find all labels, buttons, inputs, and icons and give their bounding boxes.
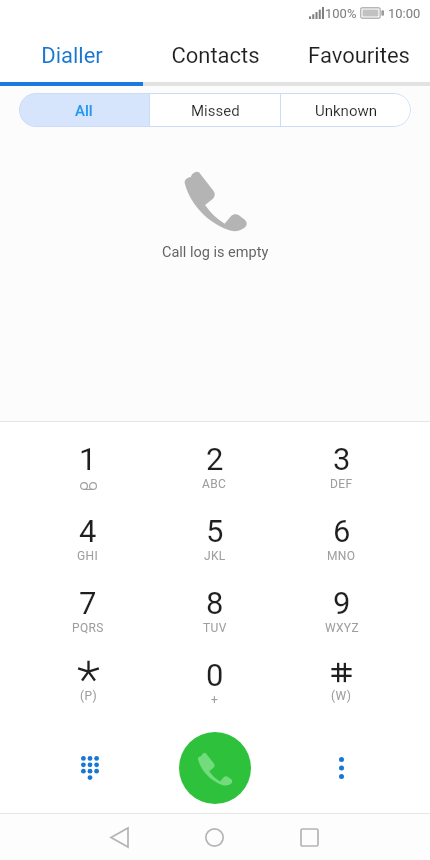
button[interactable]: Contacts xyxy=(144,26,287,82)
button[interactable]: (P) xyxy=(25,657,151,729)
staticText: 10:00 xyxy=(388,6,421,21)
button[interactable]: 5 xyxy=(151,513,278,585)
staticText: 1 xyxy=(79,441,97,477)
staticText: PQRS xyxy=(72,621,104,635)
staticText: Unknown xyxy=(315,102,378,120)
staticText: 100% xyxy=(325,6,357,21)
staticText: Dialler xyxy=(41,43,103,69)
button[interactable]: (W) xyxy=(278,657,405,729)
staticText: All xyxy=(75,102,93,120)
button[interactable]: 3 xyxy=(278,441,405,513)
staticText: 2 xyxy=(206,441,224,477)
button[interactable]: Favourites xyxy=(287,26,430,82)
button[interactable]: Unknown xyxy=(281,93,411,127)
staticText: JKL xyxy=(204,549,226,563)
button[interactable]: Missed xyxy=(150,93,280,127)
staticText: 4 xyxy=(79,513,97,549)
staticText: Contacts xyxy=(171,43,260,69)
button[interactable]: 4 xyxy=(25,513,151,585)
button[interactable]: 7 xyxy=(25,585,151,657)
staticText: Call log is empty xyxy=(162,244,269,261)
staticText: 0 xyxy=(206,657,224,693)
staticText: MNO xyxy=(327,549,356,563)
staticText: TUV xyxy=(203,621,227,635)
button[interactable]: Dialler xyxy=(0,26,144,82)
button[interactable]: More options xyxy=(278,729,405,813)
button[interactable]: 2 xyxy=(151,441,278,513)
button[interactable]: All xyxy=(19,93,149,127)
button[interactable]: Home xyxy=(186,814,242,860)
staticText: 8 xyxy=(206,585,224,621)
staticText: + xyxy=(211,693,219,707)
staticText: GHI xyxy=(77,549,99,563)
staticText: 5 xyxy=(206,513,224,549)
button[interactable]: 8 xyxy=(151,585,278,657)
staticText: (P) xyxy=(80,689,97,703)
button[interactable]: 1 xyxy=(25,441,151,513)
button[interactable]: Back xyxy=(91,814,147,860)
button[interactable]: Call xyxy=(179,732,251,804)
button[interactable]: Recent apps xyxy=(281,814,337,860)
button[interactable]: 0 xyxy=(151,657,278,729)
button[interactable]: 9 xyxy=(278,585,405,657)
staticText: Missed xyxy=(191,102,240,120)
staticText: 7 xyxy=(79,585,97,621)
staticText: 6 xyxy=(333,513,351,549)
staticText: ABC xyxy=(202,477,227,491)
staticText: 3 xyxy=(333,441,351,477)
staticText: DEF xyxy=(330,477,353,491)
staticText: 9 xyxy=(333,585,351,621)
staticText: Favourites xyxy=(308,43,410,69)
button[interactable]: 6 xyxy=(278,513,405,585)
button[interactable]: Show dialpad xyxy=(25,729,151,813)
staticText: WXYZ xyxy=(325,621,359,635)
staticText: (W) xyxy=(331,689,352,703)
